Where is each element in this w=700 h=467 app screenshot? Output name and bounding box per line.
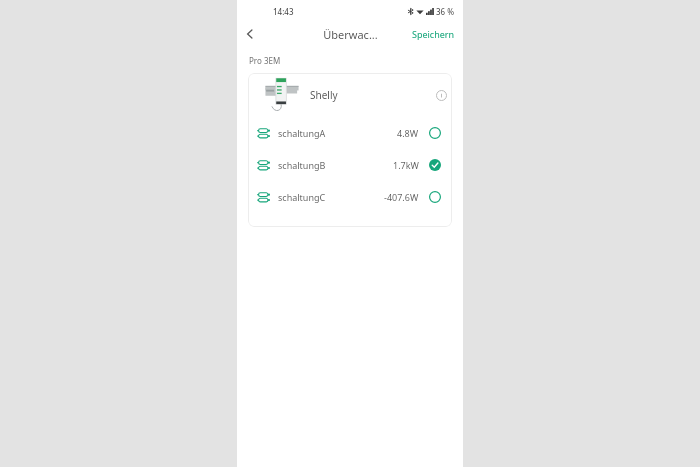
- button[interactable]: Info: [430, 84, 452, 106]
- staticText: schaltungB: [278, 159, 326, 171]
- staticText: Überwac...: [323, 27, 378, 42]
- button[interactable]: Select schaltungC: [426, 188, 444, 206]
- button[interactable]: schaltungA: [248, 117, 452, 149]
- button[interactable]: Selected schaltungB: [426, 156, 444, 174]
- button[interactable]: schaltungC: [248, 181, 452, 213]
- staticText: 14:43: [273, 6, 294, 17]
- staticText: Shelly: [310, 88, 338, 102]
- button[interactable]: Select schaltungA: [426, 124, 444, 142]
- staticText: 1.7kW: [393, 159, 419, 171]
- staticText: schaltungC: [278, 191, 326, 203]
- staticText: schaltungA: [278, 127, 326, 139]
- staticText: 36 %: [436, 6, 455, 17]
- button[interactable]: Back: [237, 22, 263, 46]
- button[interactable]: schaltungB: [248, 149, 452, 181]
- button[interactable]: Shelly: [248, 73, 452, 117]
- staticText: 4.8W: [397, 127, 419, 139]
- staticText: -407.6W: [384, 191, 419, 203]
- staticText: Speichern: [412, 28, 455, 40]
- button[interactable]: Speichern: [404, 24, 463, 44]
- staticText: Pro 3EM: [249, 55, 281, 66]
